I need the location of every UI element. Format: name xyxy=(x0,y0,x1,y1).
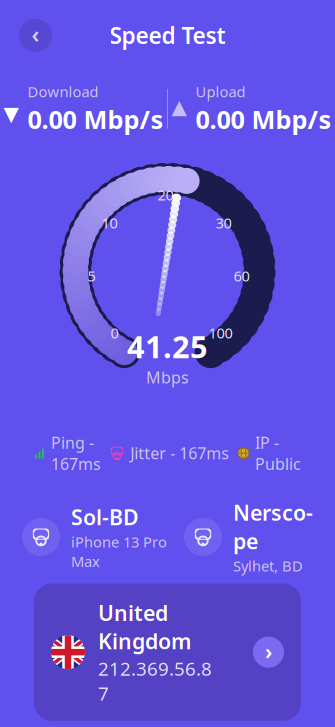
staticText: Mbps xyxy=(146,367,189,388)
staticText: 212.369.56.87 xyxy=(98,656,212,706)
staticText: 30 xyxy=(215,213,231,233)
staticText: 0.00 Mbp/s xyxy=(195,102,331,136)
staticText: Sol-BD xyxy=(71,503,139,531)
button[interactable]: Nerscope xyxy=(184,498,313,575)
staticText: 100 xyxy=(208,323,232,343)
staticText: ‹ xyxy=(31,19,39,49)
staticText: United Kingdom xyxy=(98,598,191,655)
staticText: 20 xyxy=(157,185,173,205)
staticText: ▼ xyxy=(3,102,18,125)
button[interactable]: Sol-BD xyxy=(22,503,167,571)
staticText: Ping - 167ms xyxy=(51,432,101,474)
staticText: 60 xyxy=(233,266,249,286)
staticText: › xyxy=(265,637,272,665)
staticText: Speed Test xyxy=(109,20,225,50)
staticText: ▲ xyxy=(171,95,186,118)
button[interactable]: Back xyxy=(19,19,52,52)
staticText: Jitter - 167ms xyxy=(130,442,229,464)
staticText: 10 xyxy=(101,213,117,233)
staticText: Sylhet, BD xyxy=(233,556,303,576)
staticText: 5 xyxy=(87,266,95,286)
staticText: 0.00 Mbp/s xyxy=(27,102,163,136)
staticText: Download xyxy=(27,82,98,101)
staticText: IP - Public xyxy=(255,432,301,474)
staticText: Upload xyxy=(195,82,245,101)
staticText: 0 xyxy=(110,323,118,343)
staticText: iPhone 13 Pro Max xyxy=(71,532,167,571)
staticText: Nerscope xyxy=(233,498,313,555)
staticText: 41.25 xyxy=(127,326,208,367)
button[interactable]: United Kingdom xyxy=(34,583,301,721)
